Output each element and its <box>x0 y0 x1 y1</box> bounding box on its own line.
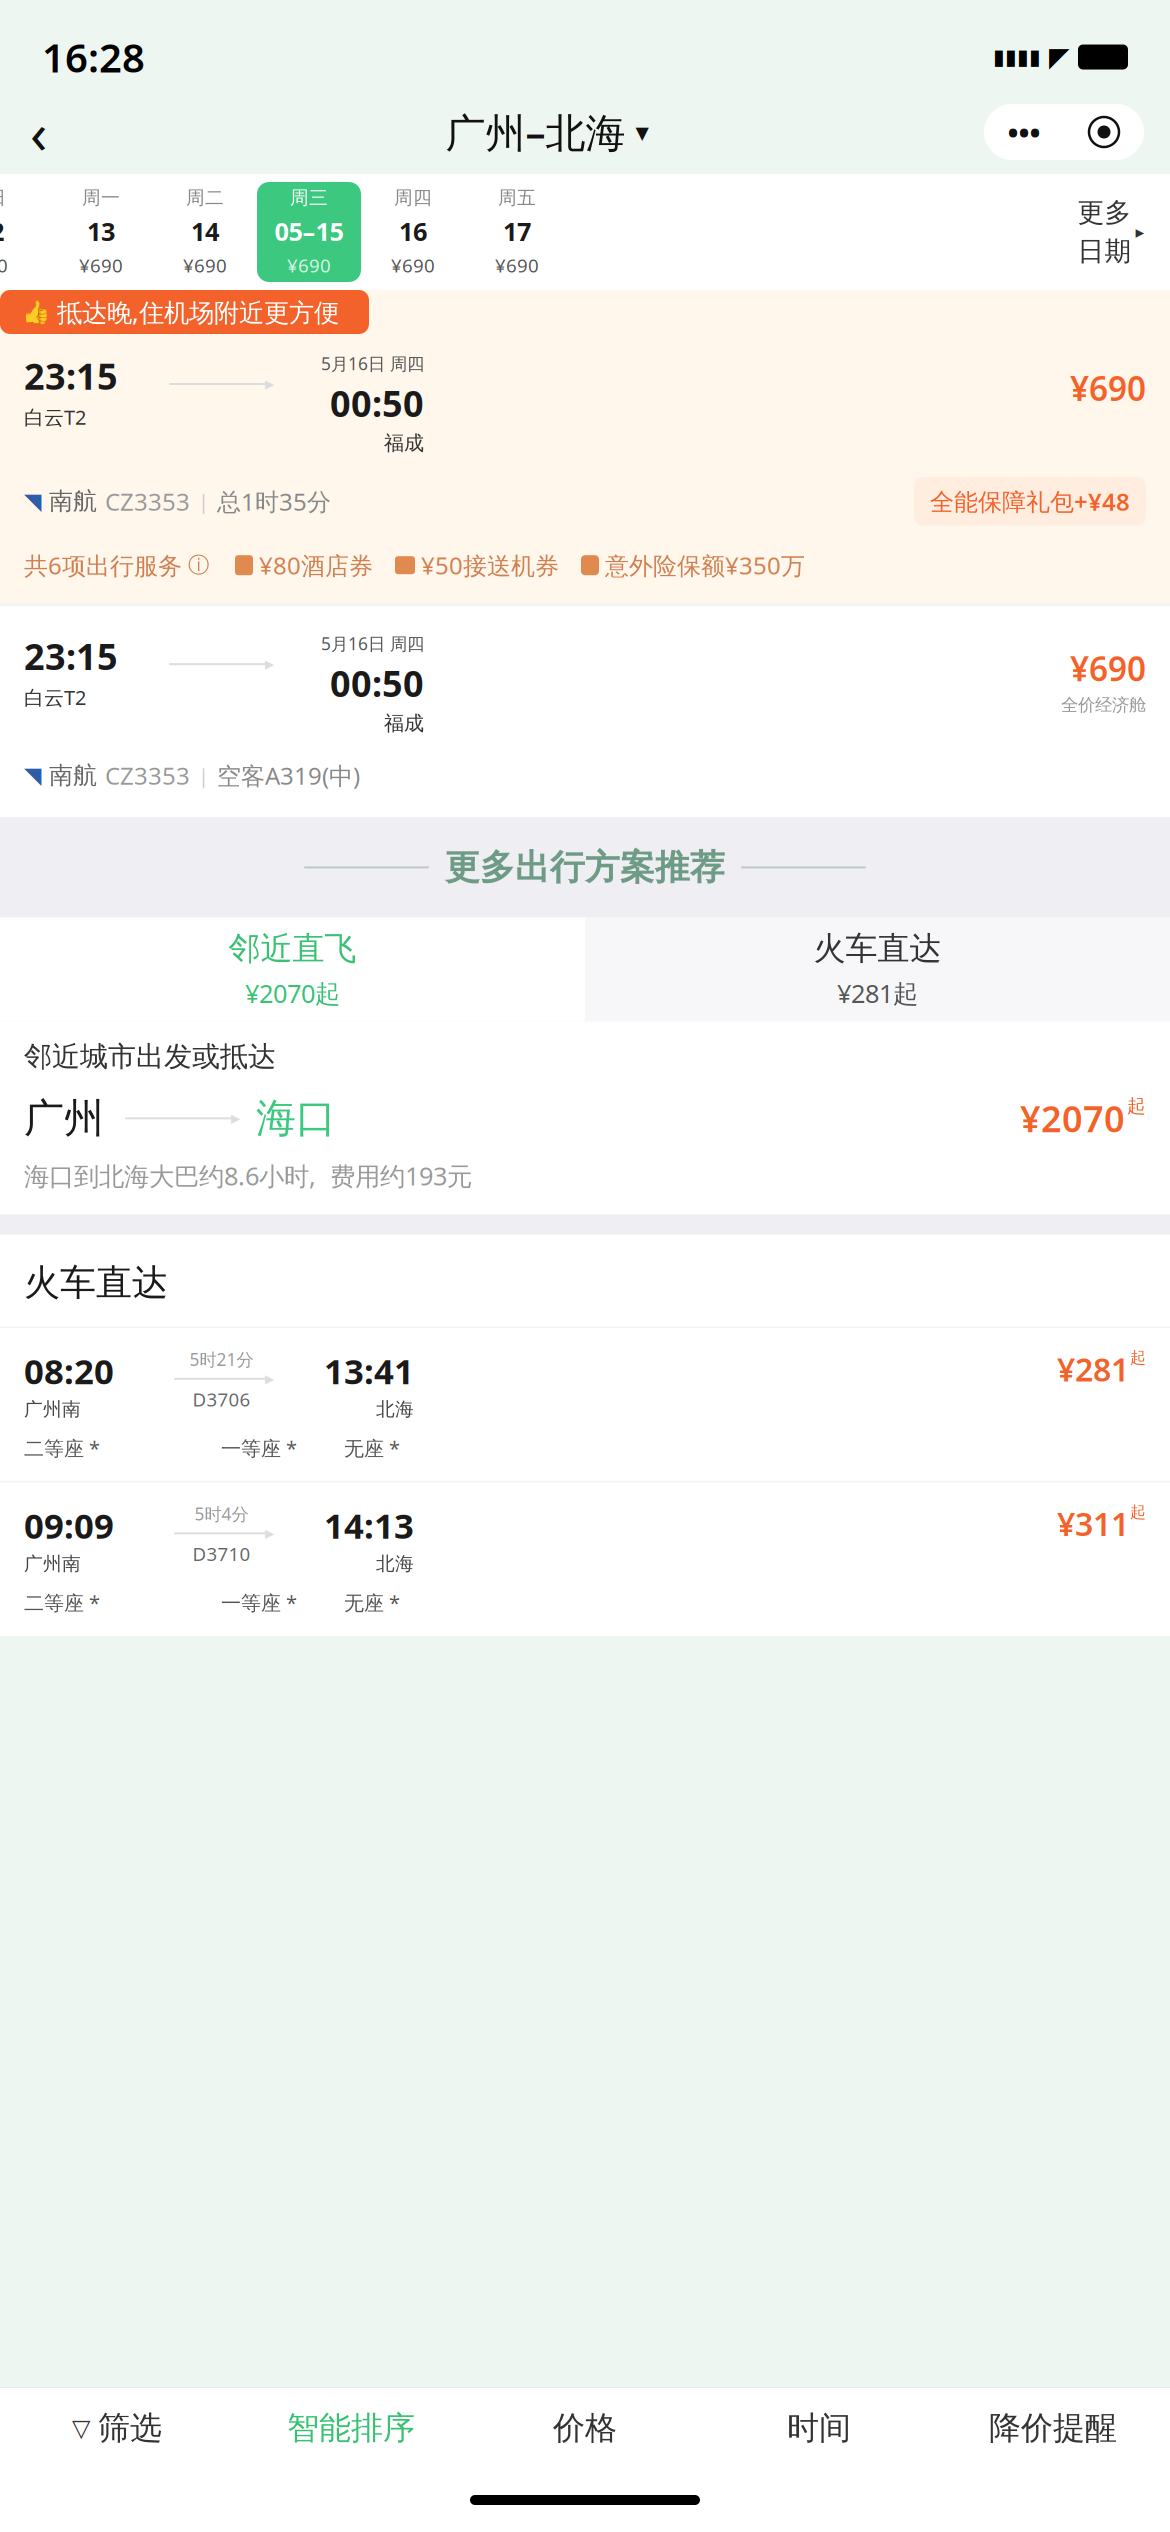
button[interactable]: 周五 <box>465 182 569 282</box>
button[interactable]: 定位 <box>1064 104 1144 160</box>
button[interactable]: 价格 <box>468 2388 702 2468</box>
staticText: ▶ <box>265 657 274 671</box>
staticText: ¥50接送机券 <box>421 549 559 581</box>
staticText: 14:13 <box>324 1502 414 1548</box>
staticText: 周一 <box>82 186 120 209</box>
staticText: 00:50 <box>330 379 424 427</box>
staticText: 空客A319(中) <box>217 759 360 791</box>
staticText: 17 <box>503 214 531 248</box>
staticText: ◤ <box>1049 42 1070 72</box>
staticText: 全能保障礼包+¥48 <box>930 485 1130 517</box>
staticText: 火车直达 <box>813 929 941 968</box>
staticText: 无座 * <box>344 1589 400 1616</box>
staticText: 👍 <box>22 299 50 325</box>
staticText: 一等座 * <box>221 1435 297 1461</box>
staticText: CZ3353 <box>105 485 190 517</box>
staticText: 05–15 <box>274 214 343 248</box>
staticText: ¥690 <box>79 253 123 278</box>
button[interactable]: ▽ <box>0 2388 234 2468</box>
staticText: 抵达晚,住机场附近更方便 <box>57 295 339 329</box>
staticText: 更多 <box>1077 196 1131 229</box>
staticText: 23:15 <box>24 352 118 400</box>
staticText: ▸ <box>1135 222 1144 242</box>
button[interactable]: 火车直达 <box>585 917 1170 1021</box>
staticText: CZ3353 <box>105 759 190 791</box>
staticText: 周四 <box>394 186 432 209</box>
staticText: 南航 <box>49 487 97 516</box>
staticText: D3706 <box>192 1387 250 1412</box>
staticText: ‹ <box>30 95 47 169</box>
staticText: 14 <box>191 214 219 248</box>
staticText: ▶ <box>265 1526 274 1540</box>
staticText: 总1时35分 <box>217 485 331 517</box>
staticText: 5月16日 周四 <box>321 632 424 655</box>
staticText: ¥690 <box>1070 366 1146 410</box>
button[interactable]: 日 <box>0 182 49 282</box>
staticText: ▶ <box>265 377 274 391</box>
staticText: 00:50 <box>330 659 424 707</box>
staticText: ¥690 <box>1070 646 1146 690</box>
staticText: 白云T2 <box>24 684 86 710</box>
staticText: 日 <box>0 186 6 209</box>
staticText: ¥281起 <box>837 976 918 1010</box>
staticText: 起 <box>1130 1502 1146 1522</box>
staticText: 邻近城市出发或抵达 <box>24 1039 276 1074</box>
staticText: 全价经济舱 <box>1061 694 1146 716</box>
staticText: ¥311 <box>1057 1502 1129 1545</box>
staticText: 无座 * <box>344 1435 400 1461</box>
staticText: ¥690 <box>183 253 227 278</box>
staticText: 5月16日 周四 <box>321 352 424 375</box>
staticText: 起 <box>1127 1094 1146 1117</box>
staticText: 周五 <box>498 186 536 209</box>
button[interactable]: 广州–北海 <box>445 105 648 158</box>
button[interactable]: 降价提醒 <box>936 2388 1170 2468</box>
staticText: D3710 <box>192 1541 250 1566</box>
staticText: 广州 <box>24 1094 104 1143</box>
staticText: 二等座 * <box>24 1435 100 1461</box>
button[interactable]: 时间 <box>702 2388 936 2468</box>
staticText: 周二 <box>186 186 224 209</box>
button[interactable]: 智能排序 <box>234 2388 468 2468</box>
staticText: 筛选 <box>98 2408 162 2448</box>
staticText: 南航 <box>49 761 97 790</box>
button[interactable]: 09:09 <box>0 1482 1170 1636</box>
staticText: 起 <box>1130 1348 1146 1367</box>
staticText: 周三 <box>290 186 328 209</box>
staticText: ⓘ <box>188 552 209 578</box>
staticText: 时间 <box>787 2408 851 2448</box>
staticText: 福成 <box>384 711 424 736</box>
staticText: 更多出行方案推荐 <box>445 846 725 889</box>
staticText: 火车直达 <box>24 1261 168 1305</box>
staticText: ▽ <box>72 2414 90 2442</box>
button[interactable]: 更多 <box>984 104 1064 160</box>
button[interactable]: 更多 <box>1052 174 1170 290</box>
button[interactable]: 周一 <box>49 182 153 282</box>
staticText: 北海 <box>376 1552 414 1575</box>
staticText: | <box>198 762 209 789</box>
staticText: ▶ <box>231 1111 240 1125</box>
button[interactable]: 08:20 <box>0 1328 1170 1481</box>
button[interactable]: 周三 <box>257 182 361 282</box>
staticText: 一等座 * <box>221 1589 297 1616</box>
staticText: ••• <box>1007 112 1040 151</box>
button[interactable]: 周二 <box>153 182 257 282</box>
staticText: 邻近直飞 <box>228 929 356 968</box>
staticText: ▮▮▮▮ <box>993 45 1041 69</box>
staticText: 13:41 <box>324 1348 414 1394</box>
staticText: ¥690 <box>287 253 331 278</box>
button[interactable]: 邻近直飞 <box>0 917 585 1021</box>
staticText: 日期 <box>1077 235 1131 268</box>
staticText: 90 <box>0 253 8 278</box>
staticText: ¥80酒店券 <box>259 549 373 581</box>
staticText: 广州南 <box>24 1398 81 1421</box>
button[interactable]: 返回 <box>0 100 110 164</box>
staticText: 福成 <box>384 431 424 455</box>
staticText: 广州–北海 <box>445 105 625 158</box>
staticText: 共6项出行服务 <box>24 549 182 581</box>
button[interactable]: 周四 <box>361 182 465 282</box>
staticText: 16 <box>399 214 427 248</box>
staticText: 白云T2 <box>24 404 86 430</box>
staticText: 意外险保额¥350万 <box>605 549 805 581</box>
staticText: 北海 <box>376 1398 414 1421</box>
staticText: 16:28 <box>42 30 145 83</box>
